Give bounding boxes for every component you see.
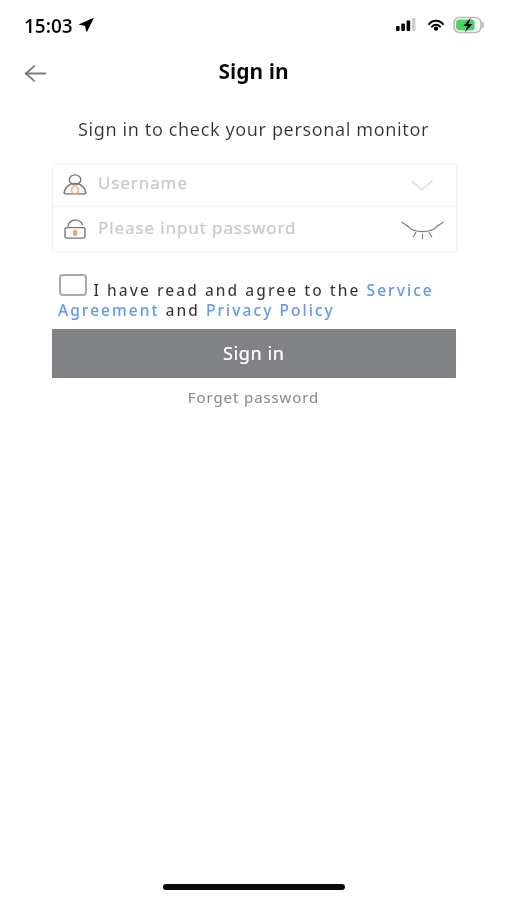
staticText: Username xyxy=(98,171,188,194)
staticText: Sign in xyxy=(0,57,507,86)
button[interactable]: Username xyxy=(52,163,457,206)
button[interactable]: Agree to Service Agreement checkbox xyxy=(59,274,87,296)
button[interactable]: Back xyxy=(13,51,58,96)
button[interactable]: I have read and agree to the Service Agr… xyxy=(58,279,458,320)
staticText: Please input password xyxy=(98,216,297,239)
staticText: 15:03 xyxy=(24,13,73,39)
button[interactable]: Show saved accounts xyxy=(399,170,445,200)
button[interactable]: Forget password xyxy=(0,387,507,407)
staticText: Sign in to check your personal monitor xyxy=(0,117,507,142)
button[interactable]: Please input password xyxy=(52,207,457,251)
staticText: Sign in xyxy=(223,341,285,366)
button[interactable]: Show password xyxy=(399,214,445,244)
button[interactable]: Sign in xyxy=(52,329,456,378)
